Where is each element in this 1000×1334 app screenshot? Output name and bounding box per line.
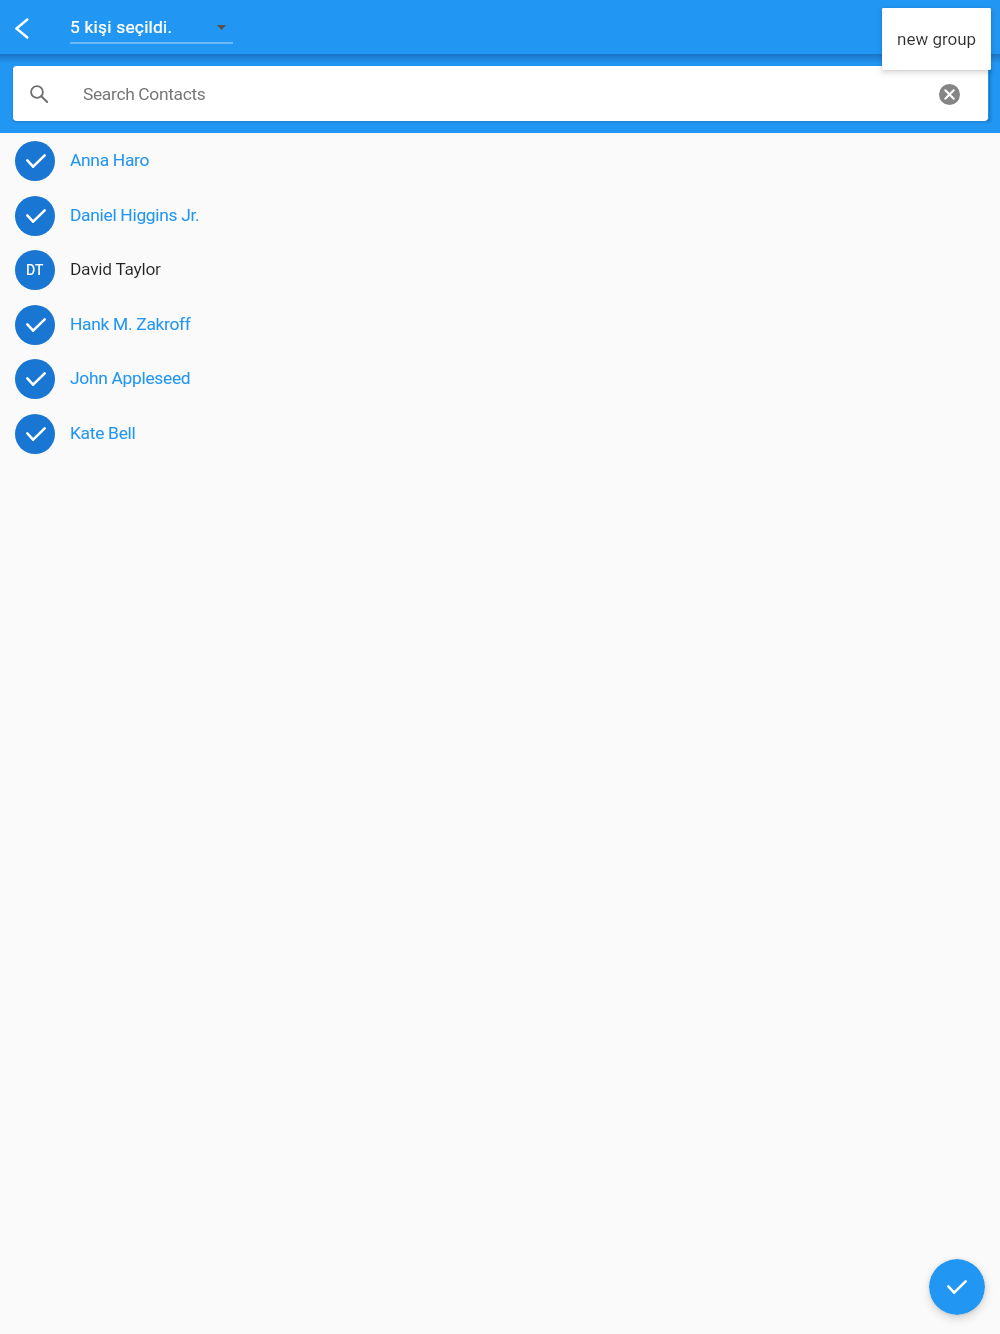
staticText: 5 kişi seçildi. [70,17,173,37]
button[interactable]: 5 kişi seçildi. [70,12,233,44]
button[interactable]: Anna Haro [0,133,1000,188]
staticText: John Appleseed [70,368,191,388]
button[interactable]: Search Contacts [13,66,988,121]
staticText: Daniel Higgins Jr. [70,205,200,225]
button[interactable]: new group [882,8,991,70]
staticText: new group [897,29,977,49]
staticText: Anna Haro [70,150,150,170]
button[interactable]: Daniel Higgins Jr. [0,188,1000,243]
staticText: Hank M. Zakroff [70,314,191,334]
button[interactable]: DT [0,242,1000,297]
button[interactable]: Back [0,0,44,55]
button[interactable]: Hank M. Zakroff [0,297,1000,352]
staticText: David Taylor [70,259,161,279]
button[interactable]: John Appleseed [0,351,1000,406]
button[interactable]: Kate Bell [0,406,1000,461]
button[interactable]: Clear search [938,83,960,105]
button[interactable]: Confirm selection [929,1259,985,1315]
staticText: DT [26,262,44,278]
staticText: Kate Bell [70,423,136,443]
staticText: Search Contacts [83,84,206,104]
